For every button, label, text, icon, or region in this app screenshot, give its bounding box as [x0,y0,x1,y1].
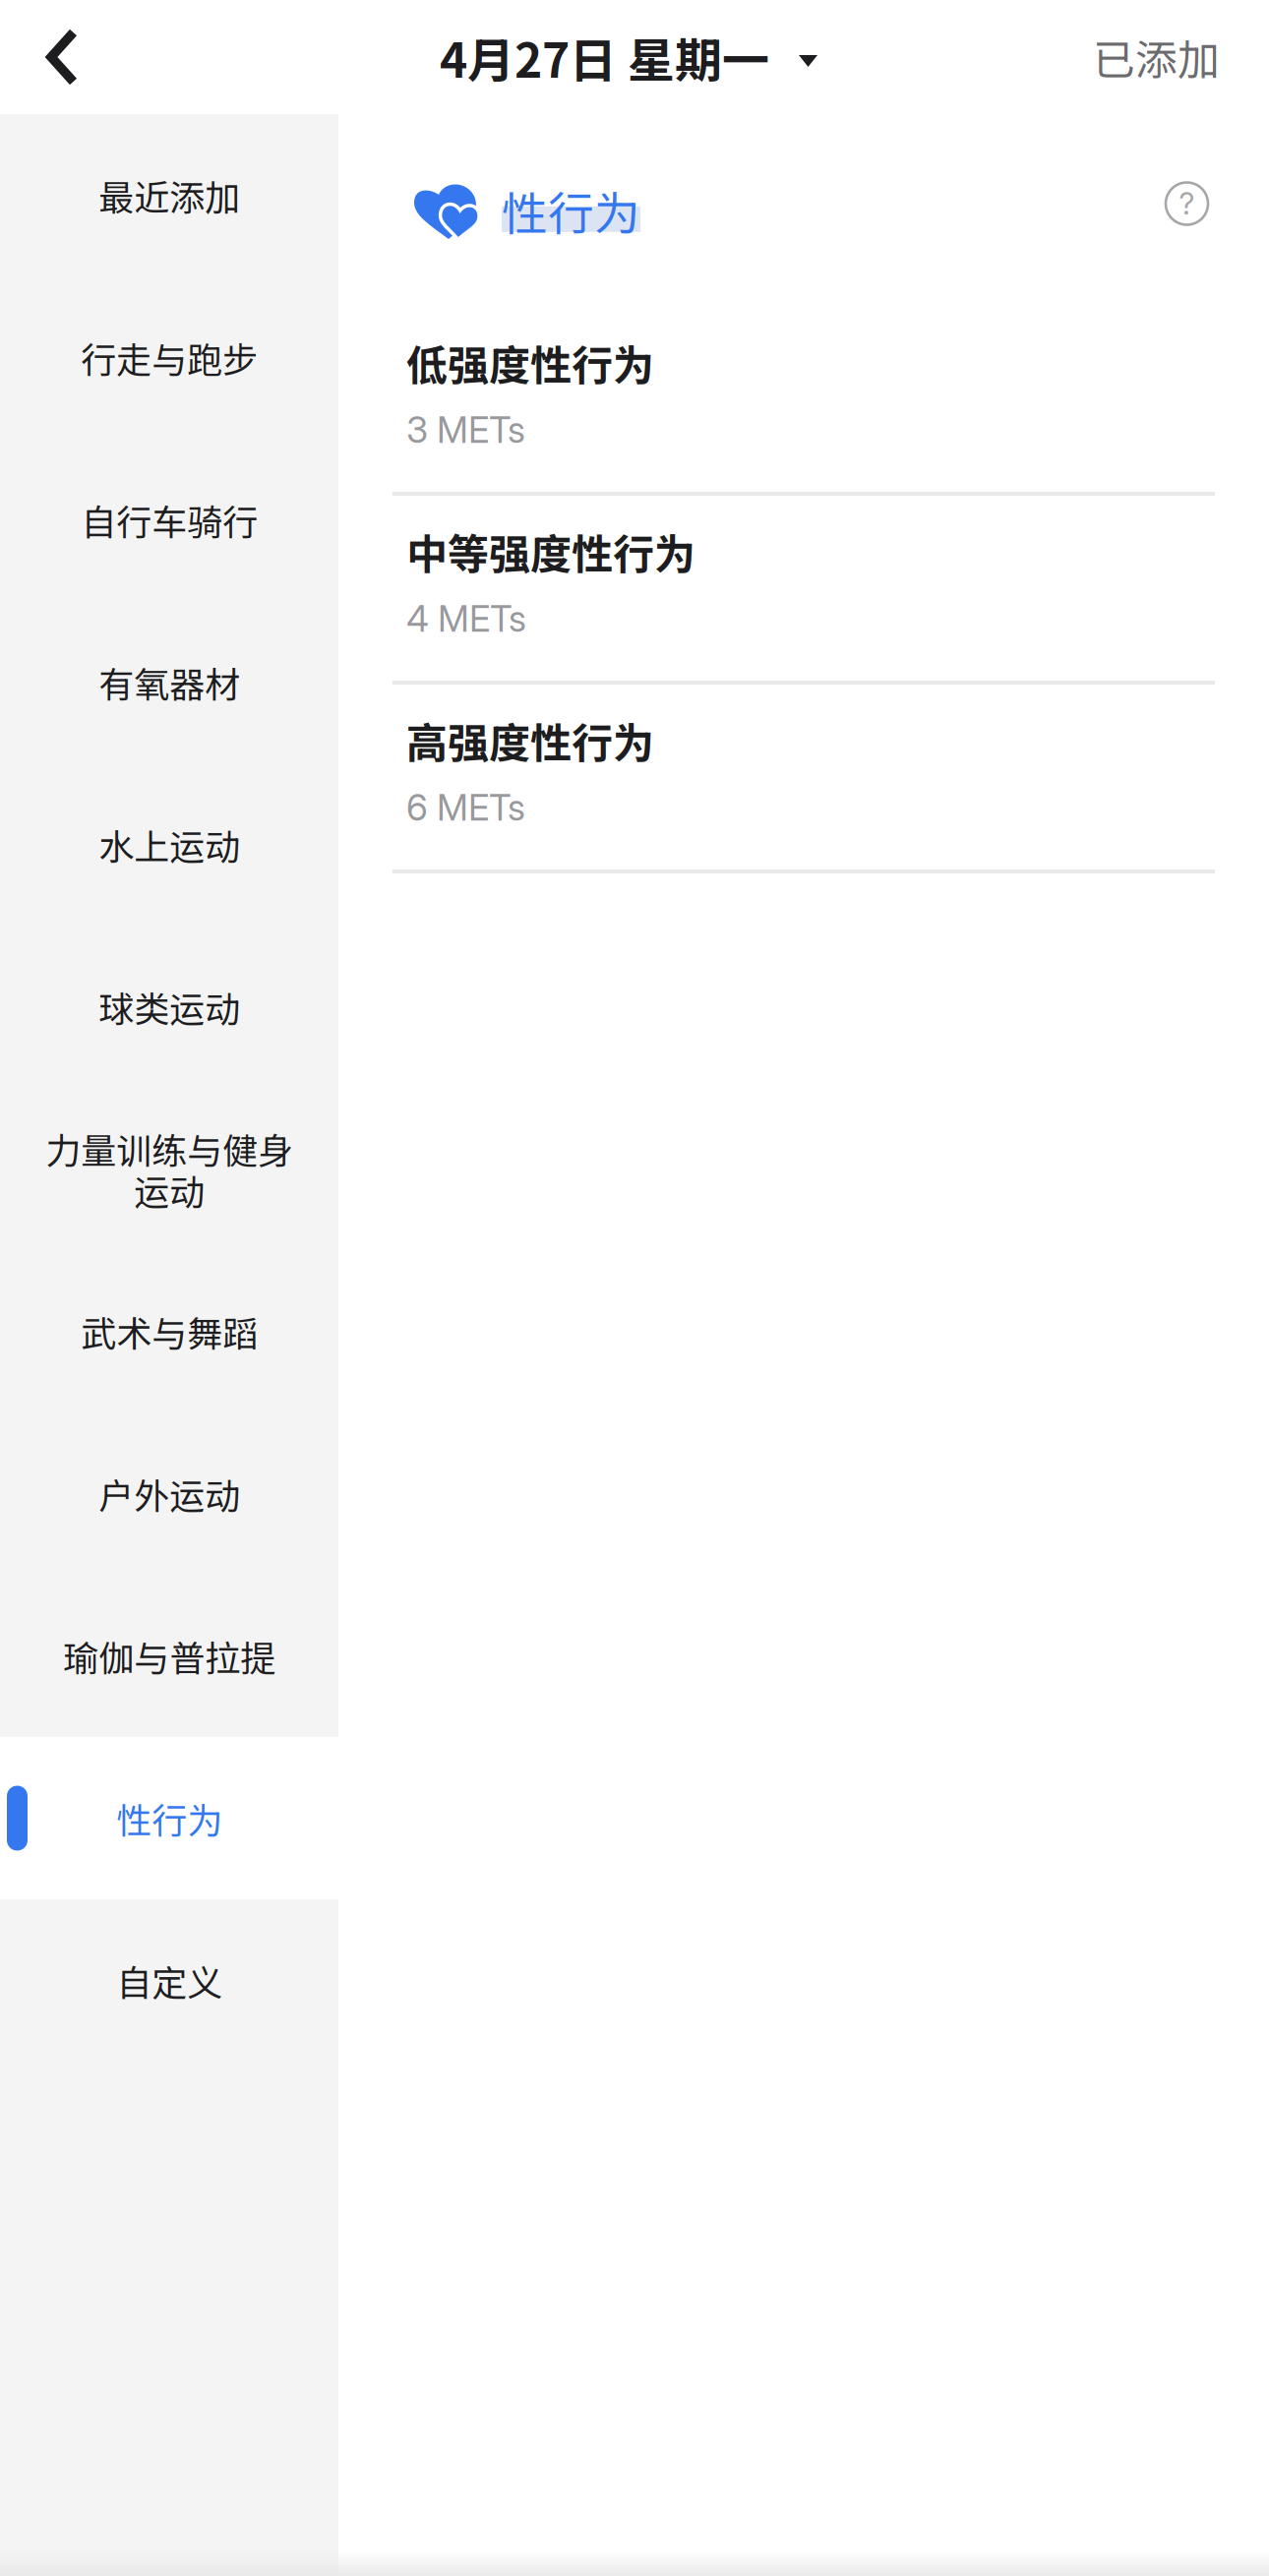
button[interactable]: 低强度性行为 [338,307,1269,496]
staticText: 最近添加 [98,170,240,221]
staticText: 力量训练与健身运动 [45,1123,293,1215]
staticText: 3 METs [406,408,525,452]
staticText: 武术与舞蹈 [81,1306,258,1357]
staticText: 行走与跑步 [81,332,258,383]
button[interactable]: 户外运动 [0,1412,338,1575]
staticText: 6 METs [406,786,525,829]
staticText: 户外运动 [98,1468,240,1519]
button[interactable]: 自定义 [0,1899,338,2062]
button[interactable]: 已添加 [1063,0,1269,115]
button[interactable]: 有氧器材 [0,601,338,763]
staticText: ? [1179,185,1195,222]
button[interactable]: 武术与舞蹈 [0,1250,338,1412]
button[interactable]: Back [0,6,108,108]
button[interactable]: 最近添加 [0,114,338,276]
button[interactable]: 中等强度性行为 [338,496,1269,685]
staticText: 球类运动 [98,981,240,1032]
staticText: 已添加 [1093,27,1220,87]
button[interactable]: 行走与跑步 [0,276,338,439]
staticText: 有氧器材 [98,656,240,708]
staticText: 4 METs [406,597,526,641]
staticText: 性行为 [116,1792,222,1844]
button[interactable]: 性行为 [0,1737,338,1899]
button[interactable]: 球类运动 [0,926,338,1088]
staticText: 高强度性行为 [406,710,654,770]
staticText: 自行车骑行 [81,494,258,545]
button[interactable]: Help [1154,178,1220,243]
button[interactable]: 自行车骑行 [0,439,338,601]
staticText: 瑜伽与普拉提 [63,1630,275,1681]
button[interactable]: 力量训练与健身运动 [0,1088,338,1250]
staticText: 性行为 [502,177,640,244]
button[interactable]: 瑜伽与普拉提 [0,1575,338,1737]
button[interactable]: 水上运动 [0,763,338,926]
staticText: 低强度性行为 [406,332,654,392]
staticText: 自定义 [116,1955,222,2006]
staticText: 中等强度性行为 [406,521,695,581]
button[interactable]: 高强度性行为 [338,685,1269,873]
staticText: 水上运动 [98,819,240,870]
staticText: 4月27日 星期一 [440,23,769,91]
